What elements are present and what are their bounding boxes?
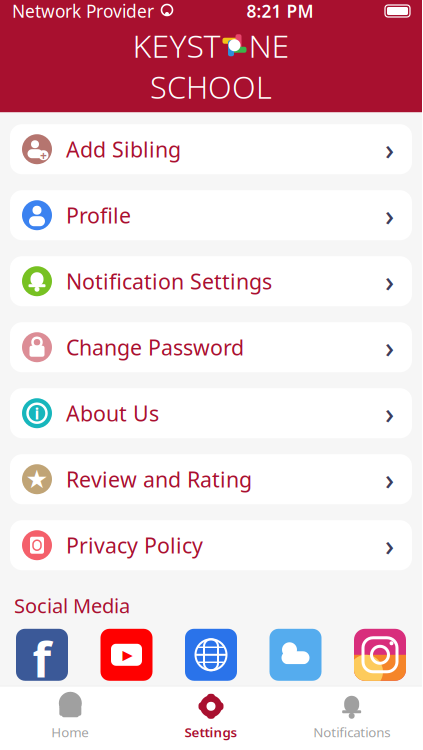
button[interactable]: ★ — [10, 454, 412, 504]
button[interactable]: Instagram — [354, 629, 406, 681]
button[interactable]: Privacy Policy — [10, 520, 412, 570]
staticText: ★ — [25, 465, 48, 494]
staticText: f — [32, 627, 51, 691]
staticText: V 1.0 — [354, 707, 406, 737]
staticText: Logout — [53, 707, 129, 737]
staticText: › — [385, 131, 394, 168]
staticText: Profile — [66, 201, 131, 229]
button[interactable]: Facebook — [16, 629, 68, 681]
button[interactable]: Change Password — [10, 322, 412, 372]
staticText: › — [385, 527, 394, 564]
button[interactable]: → — [16, 707, 129, 737]
button[interactable]: YouTube — [100, 629, 152, 681]
staticText: Privacy Policy — [66, 531, 203, 559]
staticText: › — [385, 197, 394, 234]
staticText: 8:21 PM — [246, 0, 313, 22]
button[interactable]: + — [10, 124, 412, 174]
staticText: Network Provider — [12, 0, 154, 22]
button[interactable]: i — [10, 388, 412, 438]
staticText: › — [385, 461, 394, 498]
staticText: Home — [51, 723, 89, 741]
staticText: i — [34, 403, 39, 424]
button[interactable]: Settings — [141, 693, 281, 741]
button[interactable]: Website — [185, 629, 237, 681]
staticText: Settings — [184, 723, 237, 741]
staticText: About Us — [66, 399, 159, 427]
staticText: › — [385, 395, 394, 432]
staticText: ▶ — [122, 647, 132, 662]
staticText: KEYST — [132, 24, 220, 66]
staticText: › — [385, 263, 394, 300]
staticText: Notification Settings — [66, 267, 272, 295]
button[interactable]: Profile — [10, 190, 412, 240]
staticText: SCHOOL — [150, 66, 272, 107]
staticText: › — [385, 329, 394, 366]
button[interactable]: Notifications — [281, 693, 422, 741]
staticText: Change Password — [66, 333, 244, 361]
staticText: Notifications — [313, 723, 390, 741]
staticText: Social Media — [14, 592, 130, 619]
staticText: + — [40, 147, 47, 163]
button[interactable]: Notification Settings — [10, 256, 412, 306]
button[interactable]: Home — [0, 693, 141, 741]
staticText: Review and Rating — [66, 465, 252, 493]
staticText: NE — [248, 24, 289, 66]
staticText: Add Sibling — [66, 135, 181, 163]
button[interactable]: Twitter — [269, 629, 321, 681]
